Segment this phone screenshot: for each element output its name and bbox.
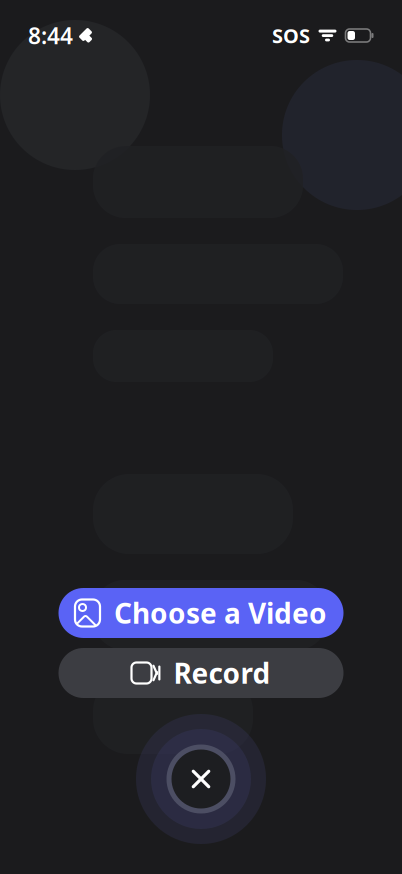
staticText: 8:44 [28, 20, 73, 50]
button[interactable]: Close [136, 714, 266, 844]
button[interactable]: Choose a Video [58, 588, 343, 638]
button[interactable]: Record [58, 648, 343, 698]
staticText: SOS [272, 22, 310, 49]
staticText: Choose a Video [114, 594, 327, 632]
staticText: Record [173, 654, 270, 692]
